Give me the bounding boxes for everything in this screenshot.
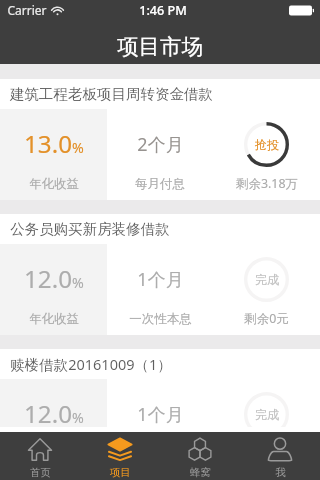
- staticText: 抢投: [255, 137, 279, 152]
- button[interactable]: 项目: [80, 432, 160, 480]
- staticText: 项目: [110, 466, 131, 479]
- button[interactable]: 赎楼借款20161009（1）: [0, 349, 320, 432]
- staticText: 赎楼借款20161009（1）: [10, 354, 172, 374]
- button[interactable]: 我: [240, 432, 320, 480]
- staticText: 1个月: [137, 267, 184, 292]
- staticText: 年化收益: [29, 176, 79, 192]
- staticText: 公务员购买新房装修借款: [10, 220, 170, 238]
- staticText: %: [72, 138, 84, 157]
- button[interactable]: 首页: [0, 432, 80, 480]
- other: Battery full: [289, 5, 314, 16]
- staticText: 剩余0元: [244, 310, 289, 327]
- staticText: 年化收益: [29, 311, 79, 327]
- other: Wi-Fi signal: [50, 5, 65, 16]
- staticText: Carrier: [7, 2, 47, 18]
- staticText: 建筑工程老板项目周转资金借款: [10, 85, 213, 103]
- button[interactable]: 完成: [244, 392, 289, 432]
- staticText: 完成: [255, 407, 279, 422]
- staticText: %: [72, 408, 84, 427]
- staticText: 2个月: [137, 132, 184, 157]
- button[interactable]: 公务员购买新房装修借款: [0, 214, 320, 335]
- button[interactable]: 蜂窝: [160, 432, 240, 480]
- staticText: 1个月: [137, 402, 184, 427]
- staticText: 项目市场: [117, 33, 203, 60]
- staticText: 12.0: [24, 397, 72, 430]
- staticText: 剩余3.18万: [236, 175, 298, 192]
- button[interactable]: 抢投: [244, 122, 289, 167]
- staticText: 13.0: [24, 127, 72, 160]
- button[interactable]: 建筑工程老板项目周转资金借款: [0, 79, 320, 200]
- staticText: 每月付息: [135, 176, 185, 192]
- staticText: 我: [275, 466, 286, 479]
- staticText: 一次性本息: [129, 311, 192, 327]
- staticText: 1:46 PM: [139, 2, 187, 19]
- staticText: 12.0: [24, 262, 72, 295]
- button[interactable]: 完成: [244, 257, 289, 302]
- staticText: 完成: [255, 272, 279, 287]
- staticText: 首页: [30, 466, 51, 479]
- staticText: 蜂窝: [190, 466, 211, 479]
- staticText: %: [72, 273, 84, 292]
